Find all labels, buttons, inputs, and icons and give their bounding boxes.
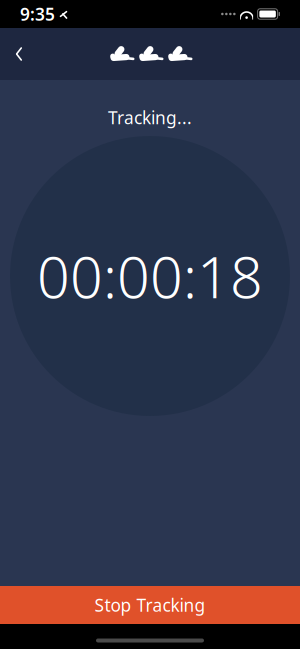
staticText: Stop Tracking (94, 593, 205, 616)
button[interactable]: Stop Tracking (0, 586, 300, 624)
staticText: Tracking... (108, 106, 192, 129)
button[interactable]: Back (0, 32, 38, 76)
staticText: 00:00:18 (37, 238, 263, 314)
staticText: 9:35 (20, 2, 55, 25)
